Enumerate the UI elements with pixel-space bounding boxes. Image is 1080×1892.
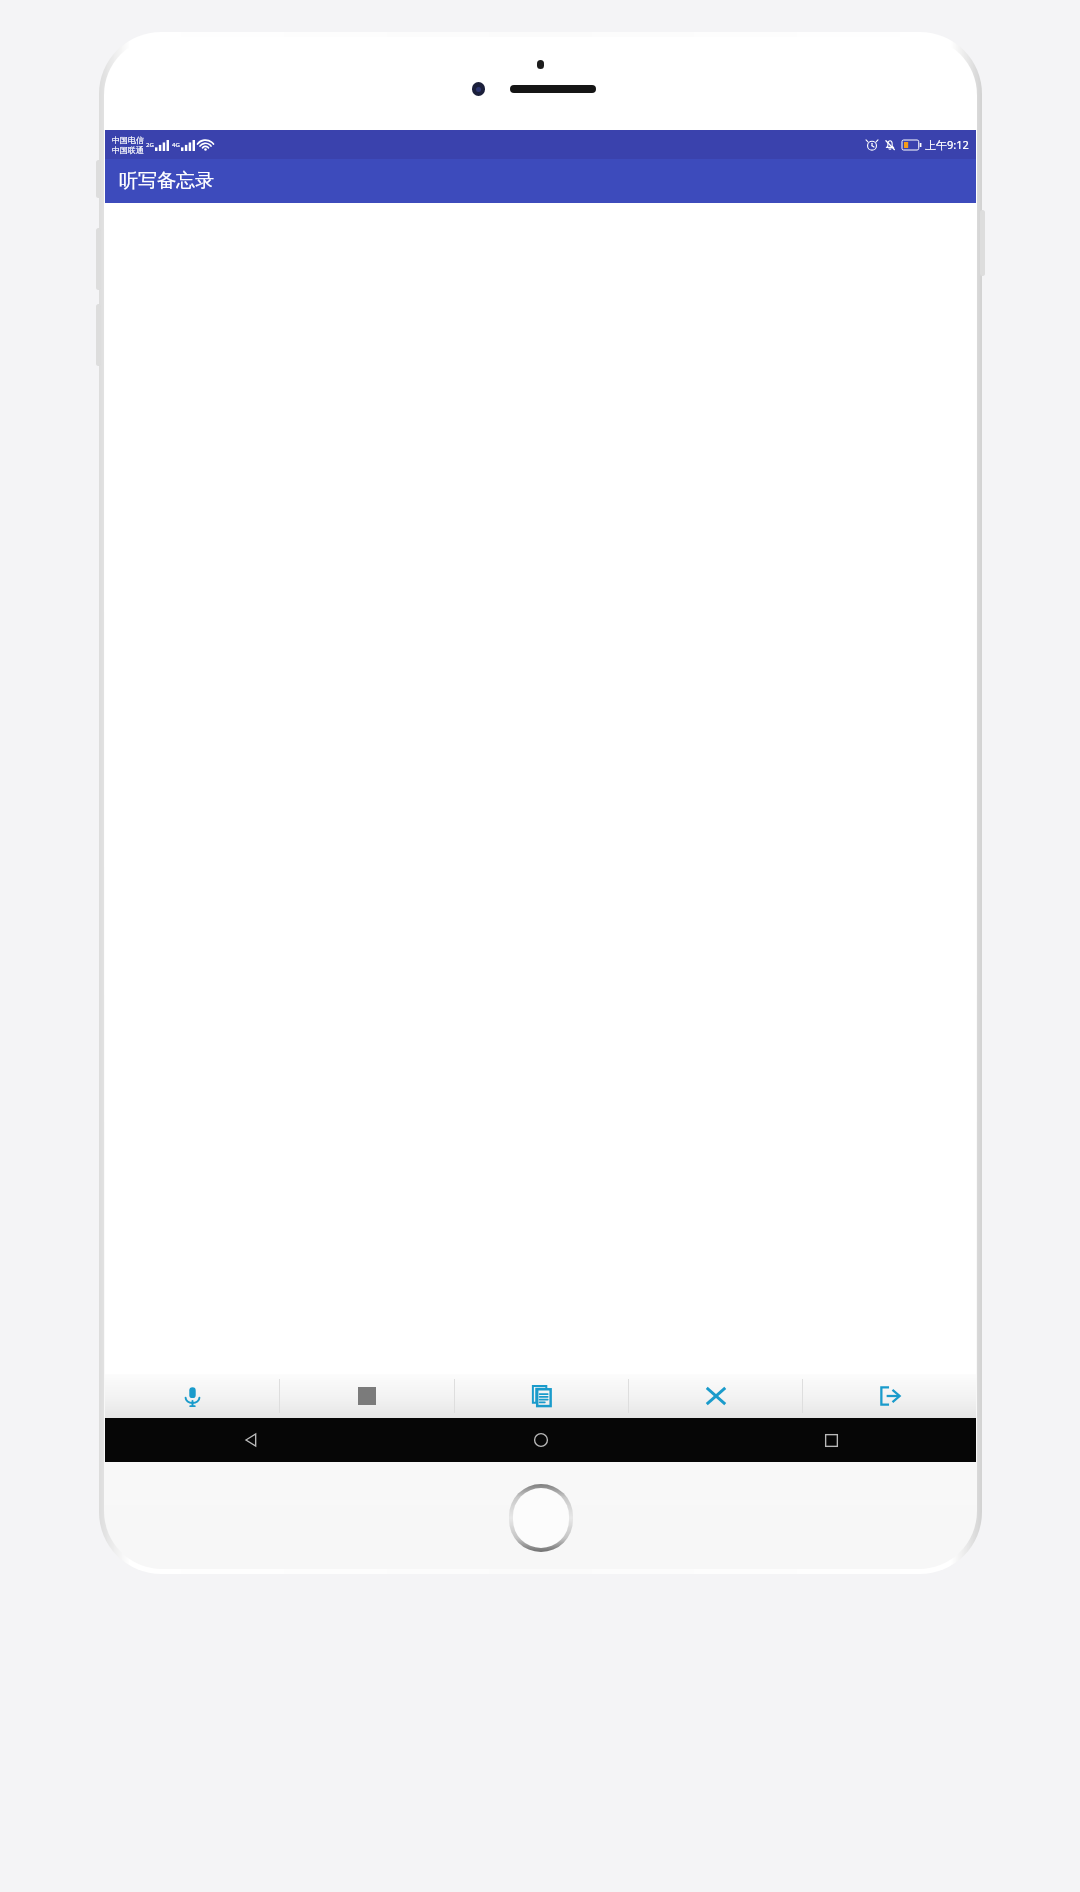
staticText: 上午9:12 <box>925 137 969 152</box>
button[interactable]: Home <box>396 1418 686 1462</box>
button[interactable]: Copy <box>455 1374 628 1418</box>
button[interactable]: Record <box>105 1374 279 1418</box>
staticText: 中国联通 <box>112 145 144 155</box>
staticText: 2G <box>146 141 154 149</box>
button[interactable]: Stop <box>280 1374 454 1418</box>
staticText: 听写备忘录 <box>119 169 214 193</box>
button[interactable]: Exit <box>803 1374 976 1418</box>
button[interactable]: Back <box>105 1418 396 1462</box>
button[interactable]: Clear <box>629 1374 802 1418</box>
staticText: 中国电信 <box>112 135 144 145</box>
staticText: 4G <box>172 141 180 149</box>
button[interactable]: Recents <box>686 1418 976 1462</box>
